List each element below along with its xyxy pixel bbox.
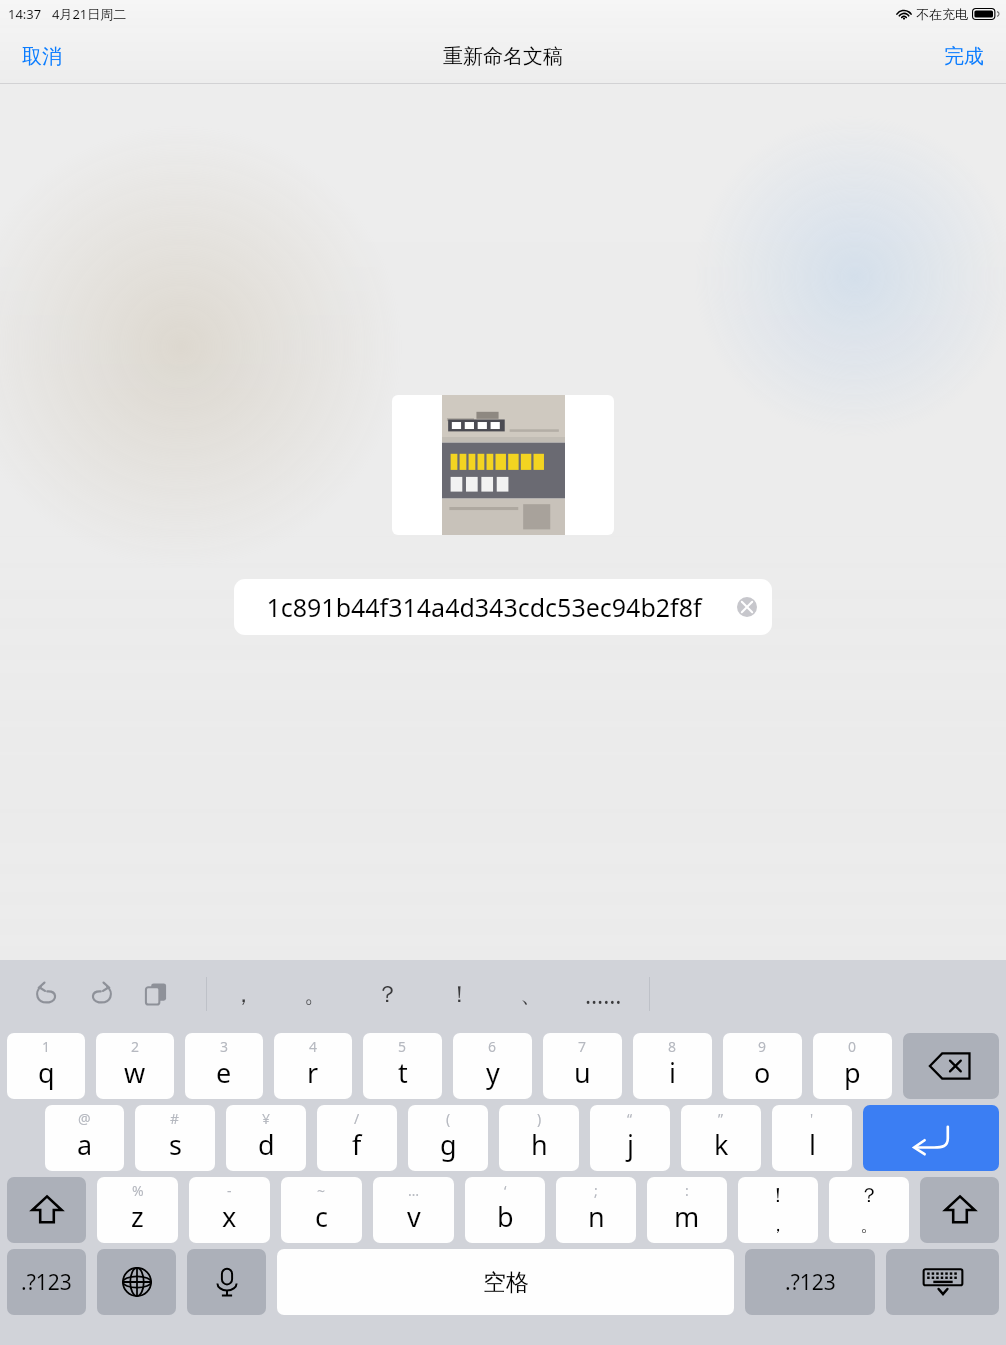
staticText: q bbox=[38, 1054, 55, 1091]
staticText: 空格 bbox=[483, 1268, 529, 1297]
staticText: @ bbox=[78, 1109, 91, 1128]
button[interactable]: Hide keyboard bbox=[886, 1249, 999, 1315]
staticText: ！ bbox=[768, 1183, 788, 1208]
button[interactable]: ！ bbox=[738, 1177, 818, 1243]
button[interactable]: @ bbox=[45, 1105, 124, 1171]
staticText: 1c891b44f314a4d343cdc53ec94b2f8f bbox=[266, 590, 702, 624]
button[interactable]: ！ bbox=[423, 960, 495, 1028]
button[interactable]: ‘ bbox=[465, 1177, 545, 1243]
staticText: x bbox=[222, 1198, 237, 1235]
staticText: “ bbox=[627, 1109, 633, 1128]
staticText: 1 bbox=[42, 1037, 51, 1056]
button[interactable]: ？ bbox=[351, 960, 423, 1028]
button[interactable]: 6 bbox=[453, 1033, 532, 1099]
button[interactable]: …… bbox=[567, 960, 639, 1028]
button[interactable]: Switch keyboard bbox=[97, 1249, 176, 1315]
button[interactable]: 3 bbox=[185, 1033, 263, 1099]
staticText: ， bbox=[232, 980, 255, 1009]
staticText: : bbox=[685, 1181, 689, 1200]
button[interactable]: Clear text bbox=[734, 594, 760, 620]
button[interactable]: 0 bbox=[813, 1033, 892, 1099]
button[interactable]: 1 bbox=[7, 1033, 85, 1099]
button[interactable]: Document thumbnail bbox=[392, 395, 614, 535]
button[interactable]: ， bbox=[207, 960, 279, 1028]
staticText: a bbox=[77, 1126, 93, 1163]
staticText: ; bbox=[594, 1181, 598, 1200]
button[interactable]: Undo bbox=[24, 972, 68, 1016]
staticText: l bbox=[809, 1126, 816, 1163]
button[interactable]: / bbox=[317, 1105, 397, 1171]
button[interactable]: Redo bbox=[80, 972, 124, 1016]
button[interactable]: Paste bbox=[134, 972, 178, 1016]
staticText: 14:37 bbox=[8, 5, 42, 23]
button[interactable]: # bbox=[135, 1105, 215, 1171]
staticText: v bbox=[407, 1198, 421, 1235]
staticText: 3 bbox=[220, 1037, 229, 1056]
button[interactable]: 取消 bbox=[0, 34, 84, 79]
button[interactable]: ” bbox=[681, 1105, 761, 1171]
staticText: m bbox=[674, 1198, 700, 1235]
button[interactable]: ~ bbox=[281, 1177, 362, 1243]
staticText: p bbox=[844, 1054, 861, 1091]
button[interactable]: : bbox=[647, 1177, 727, 1243]
button[interactable]: Return bbox=[863, 1105, 999, 1171]
staticText: 。 bbox=[304, 980, 327, 1009]
button[interactable]: Delete bbox=[903, 1033, 999, 1099]
staticText: ？ bbox=[859, 1183, 879, 1208]
staticText: s bbox=[169, 1126, 182, 1163]
staticText: y bbox=[486, 1054, 500, 1091]
staticText: ) bbox=[537, 1109, 542, 1128]
button[interactable]: ？ bbox=[829, 1177, 909, 1243]
staticText: 0 bbox=[848, 1037, 857, 1056]
staticText: z bbox=[131, 1198, 144, 1235]
staticText: - bbox=[227, 1181, 232, 1200]
button[interactable]: 5 bbox=[363, 1033, 442, 1099]
staticText: .?123 bbox=[785, 1268, 836, 1297]
button[interactable]: ( bbox=[408, 1105, 488, 1171]
staticText: b bbox=[497, 1198, 514, 1235]
staticText: ¥ bbox=[262, 1109, 271, 1128]
button[interactable]: 8 bbox=[633, 1033, 712, 1099]
button[interactable]: Shift bbox=[920, 1177, 999, 1243]
button[interactable]: 7 bbox=[543, 1033, 622, 1099]
staticText: t bbox=[398, 1054, 408, 1091]
staticText: 重新命名文稿 bbox=[443, 44, 563, 69]
button[interactable]: ; bbox=[556, 1177, 636, 1243]
button[interactable]: … bbox=[373, 1177, 454, 1243]
staticText: d bbox=[258, 1126, 275, 1163]
button[interactable]: Shift bbox=[7, 1177, 86, 1243]
staticText: i bbox=[669, 1054, 676, 1091]
button[interactable]: 完成 bbox=[922, 34, 1006, 79]
button[interactable]: % bbox=[97, 1177, 178, 1243]
button[interactable]: ' bbox=[772, 1105, 852, 1171]
staticText: 5 bbox=[398, 1037, 407, 1056]
staticText: ' bbox=[810, 1109, 814, 1128]
button[interactable]: 1c891b44f314a4d343cdc53ec94b2f8f bbox=[234, 579, 772, 635]
staticText: ” bbox=[718, 1109, 724, 1128]
staticText: n bbox=[588, 1198, 605, 1235]
staticText: % bbox=[132, 1181, 144, 1200]
button[interactable]: 4 bbox=[274, 1033, 352, 1099]
button[interactable]: 空格 bbox=[277, 1249, 734, 1315]
button[interactable]: .?123 bbox=[745, 1249, 875, 1315]
button[interactable]: “ bbox=[590, 1105, 670, 1171]
button[interactable]: 、 bbox=[495, 960, 567, 1028]
button[interactable]: ) bbox=[499, 1105, 579, 1171]
staticText: j bbox=[627, 1126, 634, 1163]
button[interactable]: 2 bbox=[96, 1033, 174, 1099]
staticText: 不在充电 bbox=[916, 6, 968, 22]
button[interactable]: 。 bbox=[279, 960, 351, 1028]
staticText: h bbox=[531, 1126, 548, 1163]
button[interactable]: 9 bbox=[723, 1033, 802, 1099]
staticText: / bbox=[354, 1109, 360, 1128]
staticText: 完成 bbox=[944, 44, 984, 69]
staticText: 9 bbox=[758, 1037, 767, 1056]
staticText: 6 bbox=[488, 1037, 497, 1056]
button[interactable]: .?123 bbox=[7, 1249, 86, 1315]
button[interactable]: ¥ bbox=[226, 1105, 306, 1171]
staticText: w bbox=[124, 1054, 146, 1091]
staticText: 取消 bbox=[22, 44, 62, 69]
staticText: e bbox=[216, 1054, 232, 1091]
button[interactable]: - bbox=[189, 1177, 270, 1243]
button[interactable]: Dictation bbox=[187, 1249, 266, 1315]
